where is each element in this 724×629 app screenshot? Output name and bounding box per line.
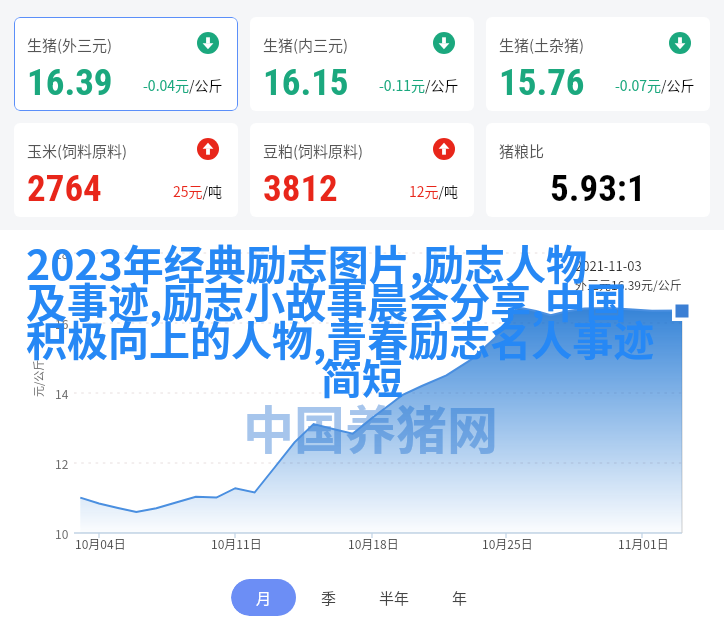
staticText: 生猪(内三元): [263, 34, 349, 56]
button[interactable]: 年: [427, 579, 493, 616]
staticText: 生猪(外三元): [27, 34, 113, 56]
button[interactable]: 季: [296, 579, 361, 616]
button[interactable]: 生猪(内三元): [250, 17, 474, 111]
staticText: 15.76: [499, 61, 585, 104]
other: Falling: [433, 32, 455, 54]
staticText: 月: [256, 587, 272, 609]
staticText: 及事迹,励志小故事晨会分享,中国: [26, 270, 627, 329]
staticText: 2023年经典励志图片,励志人物: [26, 232, 588, 291]
button[interactable]: 玉米(饲料原料): [14, 123, 238, 217]
staticText: -0.04元/公斤: [143, 75, 223, 95]
staticText: 10月25日: [482, 535, 533, 552]
staticText: 11月01日: [618, 535, 669, 552]
button[interactable]: 生猪(外三元): [14, 17, 238, 111]
other: Falling: [197, 32, 219, 54]
staticText: 12: [55, 455, 69, 472]
button[interactable]: 豆粕(饲料原料): [250, 123, 474, 217]
other: Rising: [433, 138, 455, 160]
staticText: 10月11日: [211, 535, 262, 552]
button[interactable]: 半年: [361, 579, 427, 616]
button[interactable]: 猪粮比: [486, 123, 710, 217]
staticText: 2764: [27, 167, 102, 210]
staticText: 季: [321, 587, 337, 609]
button[interactable]: 月: [231, 579, 296, 616]
staticText: 18: [55, 245, 69, 262]
staticText: 元/公斤: [30, 359, 46, 397]
staticText: 外三元16.39元/公斤: [575, 276, 682, 293]
staticText: 半年: [379, 587, 410, 609]
staticText: -0.11元/公斤: [379, 75, 459, 95]
other: Falling: [669, 32, 691, 54]
staticText: 生猪(土杂猪): [499, 34, 585, 56]
staticText: 豆粕(饲料原料): [263, 140, 364, 162]
staticText: 14: [55, 385, 69, 402]
staticText: 年: [452, 587, 468, 609]
staticText: -0.07元/公斤: [615, 75, 695, 95]
staticText: 积极向上的人物,青春励志名人事迹: [26, 308, 655, 367]
other: Rising: [197, 138, 219, 160]
staticText: 5.93:1: [550, 167, 646, 210]
staticText: 猪粮比: [499, 140, 545, 162]
staticText: 16: [55, 315, 69, 332]
staticText: 简短: [321, 346, 403, 405]
staticText: 中国养猪网: [243, 390, 499, 464]
staticText: 25元/吨: [173, 181, 223, 201]
staticText: 10: [55, 525, 69, 542]
staticText: 2021-11-03: [575, 256, 642, 275]
staticText: 16.39: [27, 61, 113, 104]
button[interactable]: 生猪(土杂猪): [486, 17, 710, 111]
staticText: 3812: [263, 167, 338, 210]
staticText: 10月18日: [348, 535, 399, 552]
staticText: 16.15: [263, 61, 349, 104]
staticText: 12元/吨: [409, 181, 459, 201]
staticText: 10月04日: [75, 535, 126, 552]
staticText: 玉米(饲料原料): [27, 140, 128, 162]
